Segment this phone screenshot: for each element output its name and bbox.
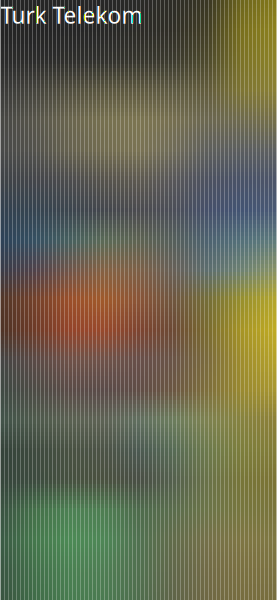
staticText: Turk Telekom xyxy=(0,0,142,30)
